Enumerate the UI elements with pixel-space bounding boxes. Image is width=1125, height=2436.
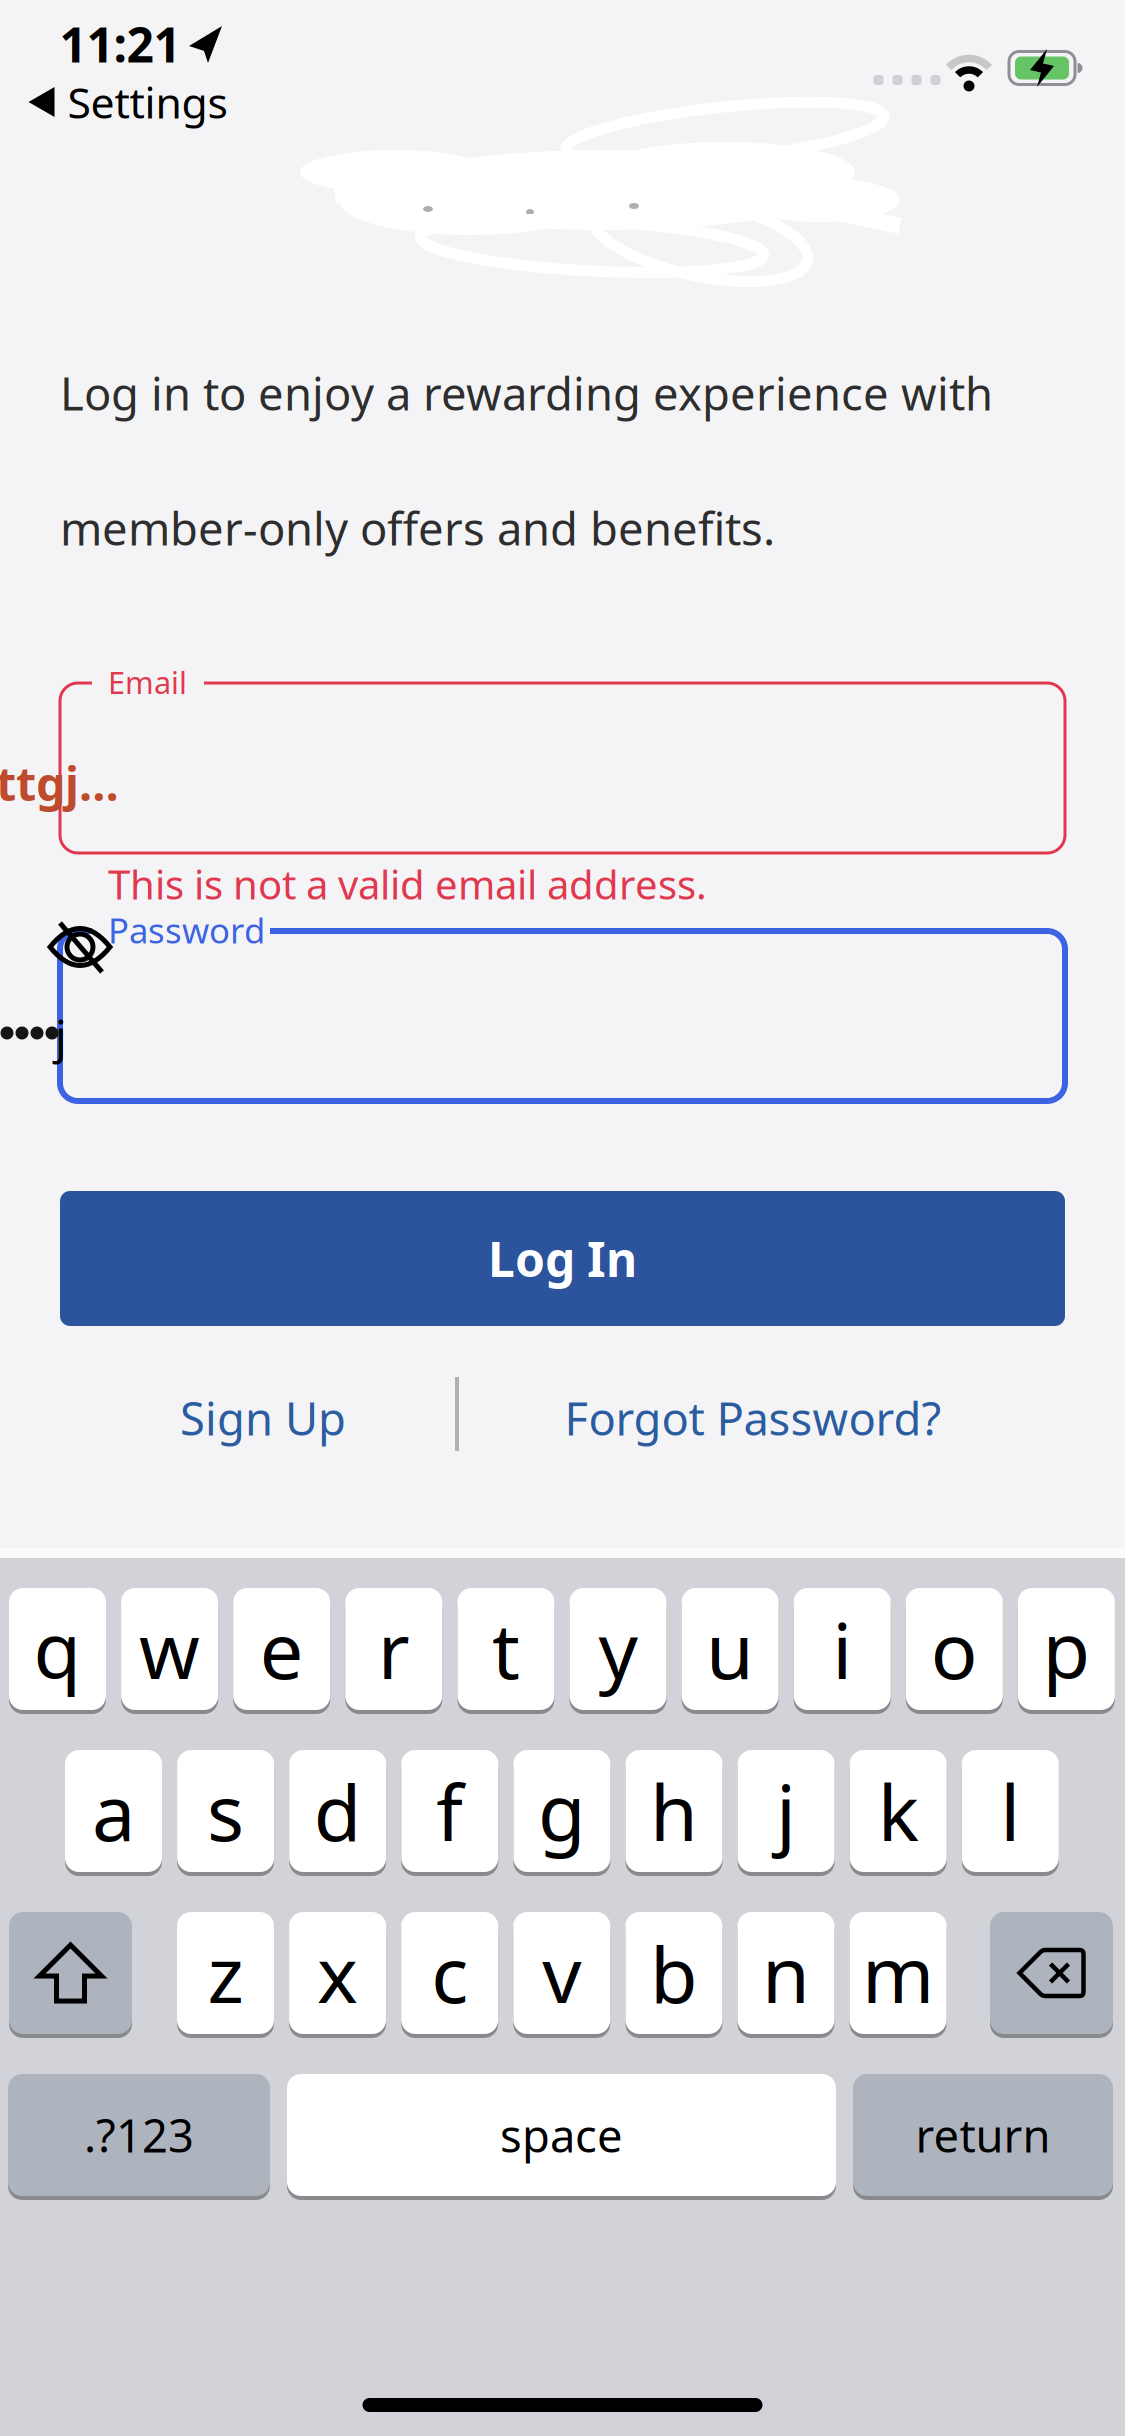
staticText: m: [862, 1922, 934, 2024]
staticText: y: [598, 1598, 637, 1700]
button[interactable]: m: [850, 1910, 947, 2036]
staticText: 11:21: [59, 12, 180, 76]
button[interactable]: f: [401, 1748, 498, 1874]
button[interactable]: j: [738, 1748, 835, 1874]
button[interactable]: d: [289, 1748, 386, 1874]
button[interactable]: e: [233, 1586, 330, 1712]
staticText: Forgot Password?: [564, 1388, 941, 1448]
staticText: j: [776, 1760, 796, 1862]
button[interactable]: u: [682, 1586, 779, 1712]
button[interactable]: space: [287, 2072, 836, 2198]
staticText: s: [207, 1760, 244, 1862]
staticText: w: [139, 1598, 200, 1700]
staticText: p: [1042, 1598, 1090, 1700]
staticText: r: [378, 1598, 410, 1700]
button[interactable]: Shift: [9, 1910, 132, 2036]
button[interactable]: .?123: [8, 2072, 270, 2198]
staticText: d: [314, 1760, 362, 1862]
button[interactable]: Settings: [28, 74, 227, 130]
staticText: z: [207, 1922, 243, 2024]
staticText: v: [542, 1922, 581, 2024]
button[interactable]: k: [850, 1748, 947, 1874]
staticText: j: [55, 1006, 67, 1066]
staticText: This is not a valid email address.: [108, 857, 707, 910]
button[interactable]: w: [121, 1586, 218, 1712]
button[interactable]: y: [569, 1586, 666, 1712]
button[interactable]: v: [513, 1910, 610, 2036]
button[interactable]: Sign Up: [180, 1388, 346, 1448]
staticText: u: [706, 1598, 754, 1700]
button[interactable]: Forgot Password?: [564, 1388, 941, 1448]
staticText: l: [1000, 1760, 1020, 1862]
button[interactable]: Log In: [60, 1191, 1065, 1326]
staticText: space: [500, 2105, 623, 2165]
button[interactable]: return: [853, 2072, 1113, 2198]
button[interactable]: a: [65, 1748, 162, 1874]
staticText: n: [762, 1922, 810, 2024]
staticText: q: [33, 1598, 81, 1700]
staticText: i: [832, 1598, 852, 1700]
staticText: .?123: [84, 2105, 194, 2165]
button[interactable]: b: [625, 1910, 722, 2036]
staticText: t: [492, 1598, 520, 1700]
button[interactable]: t: [457, 1586, 554, 1712]
button[interactable]: s: [177, 1748, 274, 1874]
staticText: a: [92, 1760, 135, 1862]
staticText: x: [317, 1922, 358, 2024]
button[interactable]: Show password: [48, 922, 112, 974]
button[interactable]: c: [401, 1910, 498, 2036]
button[interactable]: z: [177, 1910, 274, 2036]
button[interactable]: g: [513, 1748, 610, 1874]
staticText: k: [878, 1760, 919, 1862]
staticText: ttgj…: [0, 752, 119, 814]
button[interactable]: i: [794, 1586, 891, 1712]
staticText: Sign Up: [180, 1388, 346, 1448]
staticText: Log In: [488, 1227, 637, 1290]
button[interactable]: l: [962, 1748, 1059, 1874]
button[interactable]: h: [625, 1748, 722, 1874]
staticText: return: [915, 2105, 1050, 2165]
staticText: e: [260, 1598, 304, 1700]
staticText: Email: [108, 662, 187, 702]
button[interactable]: x: [289, 1910, 386, 2036]
staticText: b: [650, 1922, 698, 2024]
button[interactable]: o: [906, 1586, 1003, 1712]
staticText: c: [431, 1922, 468, 2024]
staticText: o: [931, 1598, 978, 1700]
button[interactable]: p: [1018, 1586, 1115, 1712]
staticText: g: [538, 1760, 586, 1862]
button[interactable]: r: [345, 1586, 442, 1712]
staticText: Settings: [67, 74, 227, 130]
staticText: Password: [108, 907, 265, 953]
staticText: member-only offers and benefits.: [60, 498, 775, 558]
staticText: h: [650, 1760, 698, 1862]
staticText: f: [436, 1760, 463, 1862]
button[interactable]: Delete: [990, 1910, 1113, 2036]
staticText: Log in to enjoy a rewarding experience w…: [60, 363, 993, 423]
button[interactable]: q: [9, 1586, 106, 1712]
button[interactable]: n: [737, 1910, 834, 2036]
